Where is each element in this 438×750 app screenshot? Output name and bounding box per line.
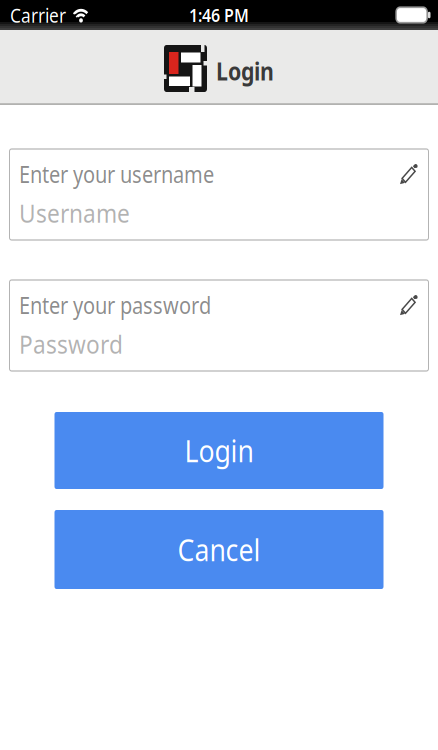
button[interactable]: Cancel: [54, 447, 383, 516]
staticText: Carrier: [10, 2, 66, 25]
staticText: Username: [19, 171, 130, 201]
staticText: Password: [19, 286, 123, 316]
staticText: Login: [216, 48, 274, 76]
staticText: 1:46 PM: [189, 2, 249, 24]
staticText: Cancel: [177, 464, 260, 499]
button[interactable]: Enter your username: [9, 130, 428, 210]
button[interactable]: Login: [54, 361, 383, 428]
staticText: Enter your username: [19, 139, 214, 166]
staticText: Enter your password: [19, 254, 211, 281]
button[interactable]: Enter your password: [9, 245, 428, 325]
